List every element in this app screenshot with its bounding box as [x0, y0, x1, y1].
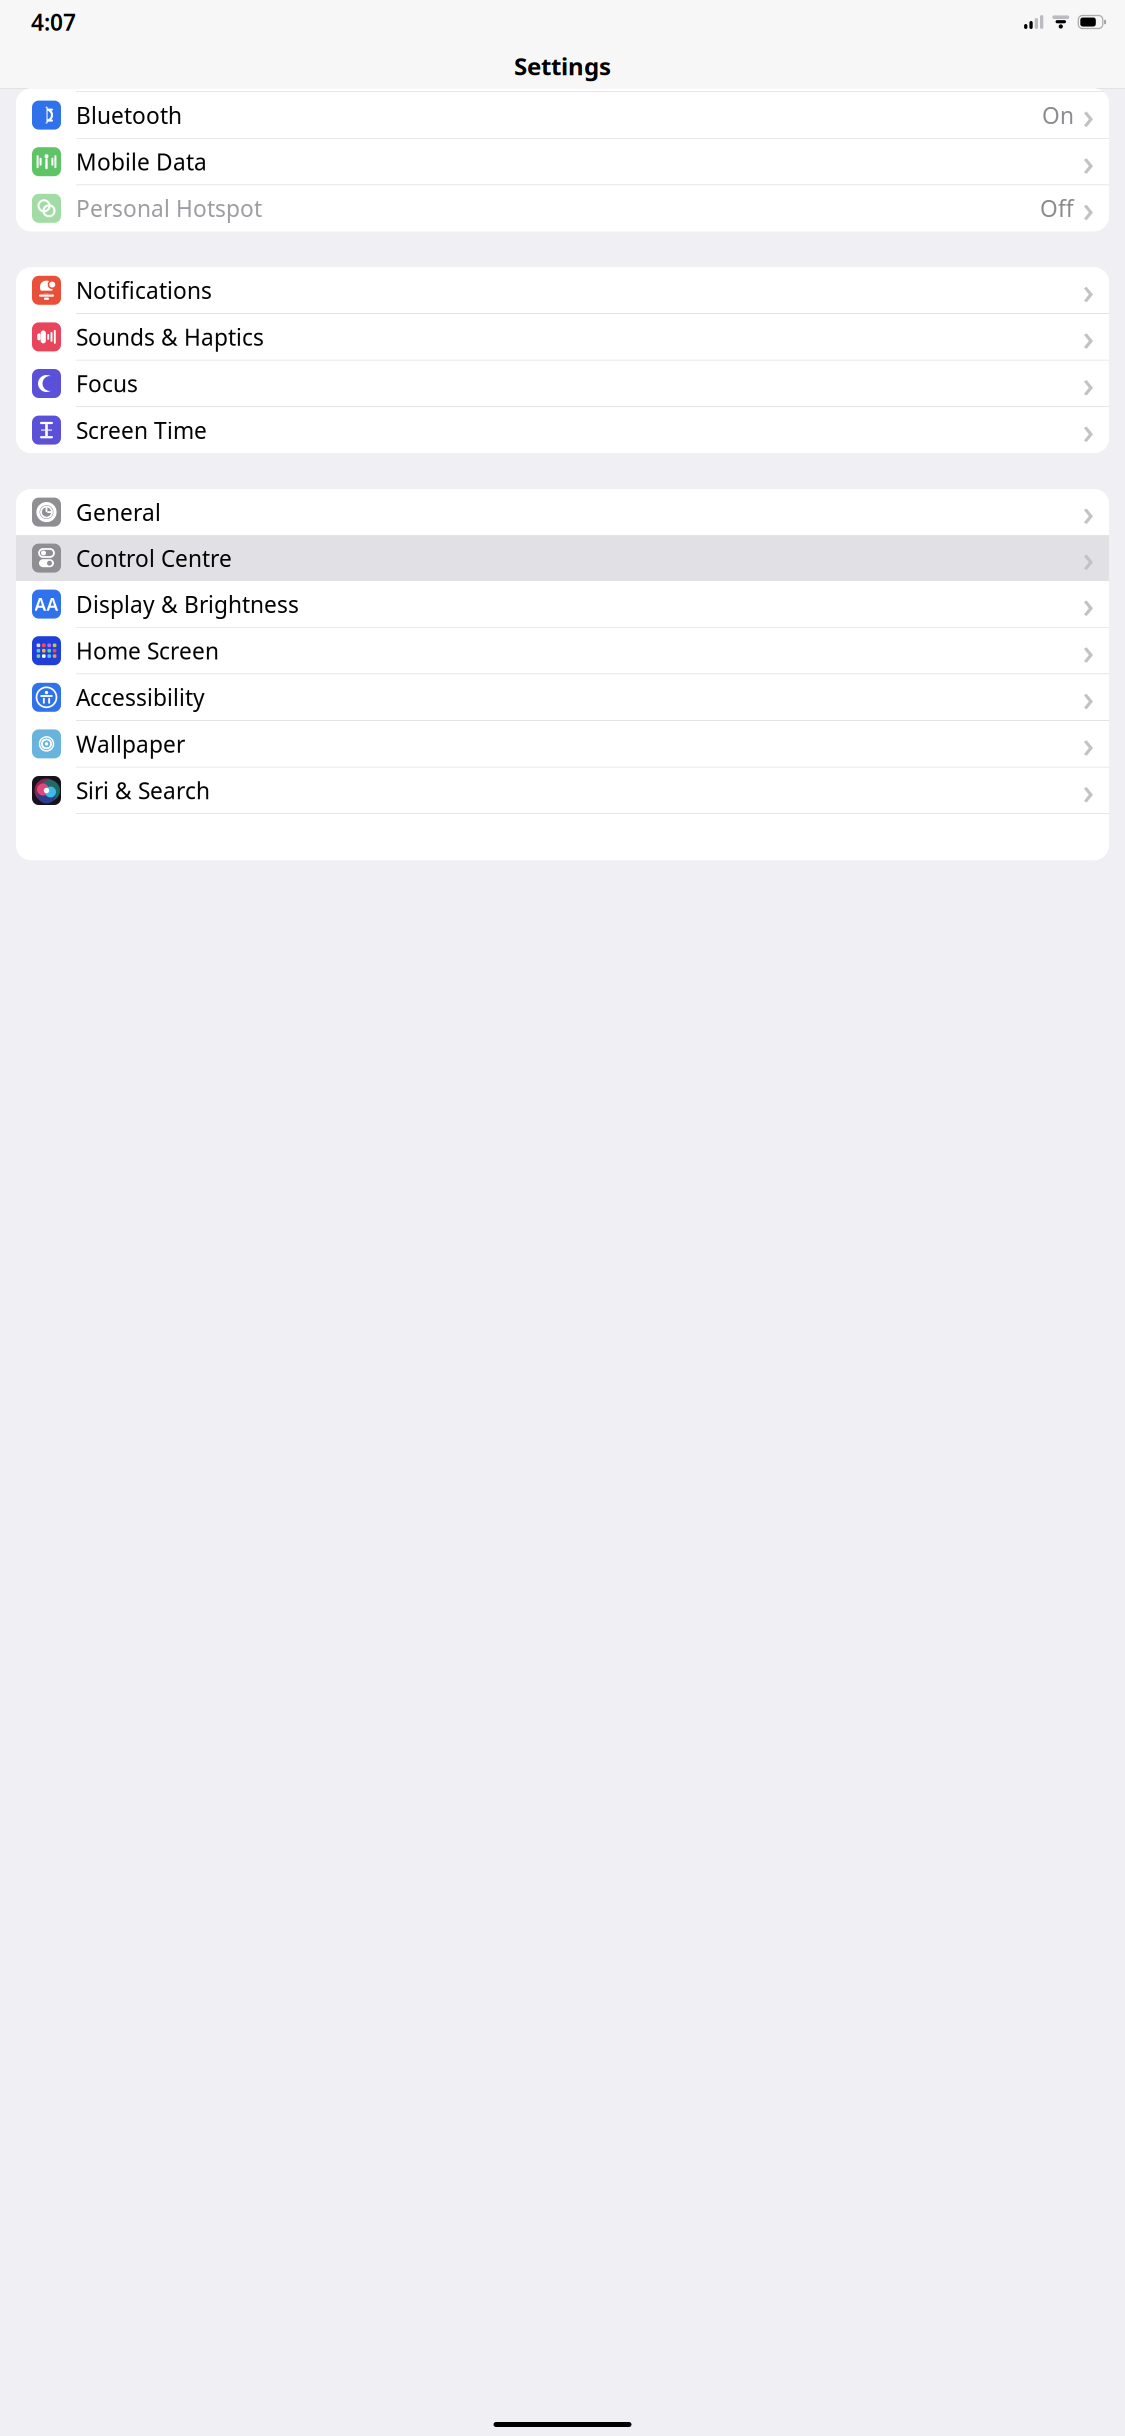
staticText: Wallpaper [76, 729, 185, 759]
button[interactable]: General [16, 489, 1109, 535]
staticText: Screen Time [76, 415, 207, 445]
button[interactable]: Siri & Search [16, 767, 1109, 813]
staticText: Notifications [76, 275, 212, 305]
staticText: › [1082, 266, 1094, 314]
button[interactable]: Home Screen [16, 628, 1109, 674]
staticText: › [1082, 673, 1094, 721]
button[interactable]: Mobile Data [16, 139, 1109, 185]
staticText: › [1082, 580, 1094, 628]
button[interactable]: Wallpaper [16, 721, 1109, 767]
staticText: On [1042, 100, 1074, 130]
staticText: › [1082, 406, 1094, 454]
staticText: › [1082, 184, 1094, 232]
staticText: Mobile Data [76, 147, 207, 177]
staticText: Control Centre [76, 543, 232, 573]
button[interactable]: Personal Hotspot [16, 185, 1109, 231]
staticText: Bluetooth [76, 100, 182, 130]
button[interactable]: AA [16, 581, 1109, 627]
staticText: AA [34, 593, 58, 616]
staticText: Off [1040, 193, 1074, 223]
staticText: Home Screen [76, 636, 219, 666]
staticText: › [1082, 720, 1094, 768]
staticText: General [76, 497, 161, 527]
staticText: Focus [76, 368, 138, 398]
staticText: › [1082, 534, 1094, 582]
staticText: Accessibility [76, 682, 205, 712]
staticText: 4:07 [31, 7, 76, 37]
staticText: › [1082, 627, 1094, 675]
staticText: Sounds & Haptics [76, 322, 264, 352]
button[interactable]: Screen Time [16, 407, 1109, 453]
button[interactable]: Notifications [16, 267, 1109, 313]
staticText: Siri & Search [76, 775, 210, 805]
button[interactable]: Bluetooth [16, 92, 1109, 138]
button[interactable]: Focus [16, 360, 1109, 406]
staticText: › [1082, 488, 1094, 536]
staticText: › [1082, 767, 1094, 814]
staticText: Settings [514, 50, 611, 82]
staticText: › [1082, 360, 1094, 407]
button[interactable]: Control Centre [16, 535, 1109, 581]
button[interactable]: Accessibility [16, 674, 1109, 720]
staticText: › [1082, 138, 1094, 186]
staticText: Personal Hotspot [76, 193, 262, 223]
staticText: › [1082, 313, 1094, 361]
button[interactable]: Sounds & Haptics [16, 314, 1109, 360]
staticText: › [1082, 91, 1094, 139]
staticText: Display & Brightness [76, 589, 299, 619]
